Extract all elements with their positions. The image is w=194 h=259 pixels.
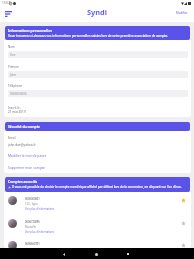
button[interactable]: Modifier (174, 9, 190, 17)
staticText: 0606720096 (25, 220, 40, 224)
staticText: Vous trouverez ci-dessous vos informatio… (8, 34, 168, 38)
staticText: Syndi (87, 7, 107, 17)
staticText: Email (8, 136, 16, 140)
staticText: 0606660701 (25, 242, 40, 246)
staticText: Voir plus d'informations (25, 207, 55, 211)
staticText: 13:57 (2, 1, 10, 5)
staticText: 0606060601 (25, 197, 40, 201)
button[interactable]: 0606660701 (4, 237, 191, 247)
staticText: Supprimer mon compte (8, 165, 45, 169)
staticText: Sécurité du compte (8, 124, 41, 129)
staticText: Nom (8, 45, 15, 49)
staticText: 0606060606 (10, 92, 27, 96)
staticText: Informations personnelles (8, 28, 52, 33)
staticText: Marseille (25, 225, 37, 229)
button[interactable]: Supprimer mon compte (4, 161, 191, 172)
staticText: Modifier le mot de passe (8, 153, 47, 157)
staticText: 123 - ligne (25, 202, 38, 206)
button[interactable]: Modifier le mot de passe (4, 149, 191, 161)
staticText: Comptes associés (8, 179, 38, 184)
staticText: John (10, 73, 17, 77)
staticText: john.doe@yahoo.fr (8, 143, 36, 147)
button[interactable]: Recent apps (124, 250, 132, 258)
button[interactable]: Home (92, 250, 100, 258)
button[interactable]: 0606720096 (4, 214, 191, 237)
button[interactable]: 0606060601 (4, 192, 191, 214)
staticText: Voir plus d'informations (25, 230, 55, 234)
button[interactable]: Back (60, 250, 68, 258)
staticText: Doe (10, 53, 16, 57)
staticText: Il vous est possible de choisir le compt… (12, 185, 182, 189)
staticText: Téléphone (8, 84, 23, 88)
staticText: Prénom (8, 65, 19, 69)
staticText: Modifier (176, 11, 188, 15)
staticText: Inscrit le : (8, 106, 22, 110)
staticText: 21 mai 2019 (8, 110, 26, 114)
button[interactable]: Open navigation menu (1, 7, 14, 20)
